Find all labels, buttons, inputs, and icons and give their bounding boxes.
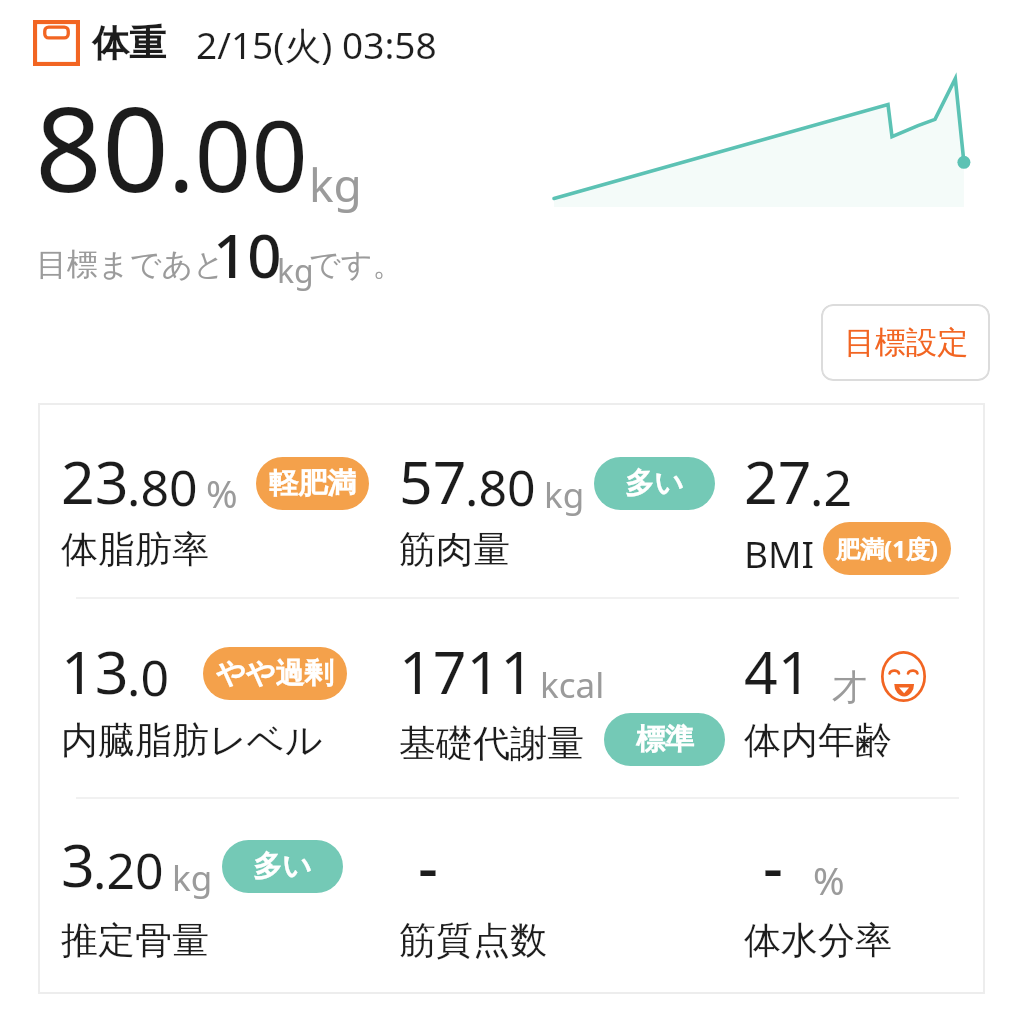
staticText: .2 [810,453,852,521]
staticText: 基礎代謝量 [399,720,584,767]
staticText: 41 [744,631,812,711]
staticText: 筋肉量 [399,526,510,573]
staticText: - [763,824,783,908]
staticText: 23 [61,441,129,521]
staticText: .80 [127,453,198,521]
staticText: kg [172,854,213,902]
staticText: 体内年齢 [744,717,892,764]
staticText: 80 [35,67,169,226]
staticText: 内臓脂肪レベル [61,717,323,764]
staticText: 体水分率 [744,917,892,964]
staticText: 2/15(火) 03:58 [196,19,437,70]
staticText: 目標設定 [844,323,968,362]
staticText: kcal [540,661,605,709]
staticText: やや過剰 [216,655,334,692]
staticText: 57 [399,441,467,521]
staticText: 1711 [399,631,534,711]
button[interactable]: 目標設定 [821,304,990,381]
staticText: 体重 [92,20,166,67]
staticText: 3 [61,824,95,904]
staticText: 体脂肪率 [61,526,209,573]
staticText: % [206,467,238,519]
staticText: .20 [93,836,164,904]
staticText: 推定骨量 [61,917,209,964]
staticText: 標準 [636,721,694,758]
staticText: です。 [309,245,404,284]
staticText: .00 [168,86,308,221]
staticText: 目標まであと [36,245,225,284]
other: 体重計 [33,20,80,66]
staticText: 多い [625,465,684,502]
staticText: - [418,824,438,908]
staticText: kg [544,471,585,519]
staticText: 10 [213,214,282,296]
staticText: % [813,854,845,906]
staticText: 軽肥満 [269,465,356,502]
staticText: kg [277,249,314,293]
staticText: 27 [744,441,812,521]
staticText: .0 [127,643,169,711]
staticText: BMI [744,528,815,578]
staticText: 肥満(1度) [836,532,938,565]
staticText: 才 [832,665,867,709]
staticText: 13 [61,631,129,711]
staticText: kg [309,153,362,216]
staticText: 多い [253,848,312,885]
staticText: .80 [465,453,536,521]
staticText: 筋質点数 [399,917,547,964]
